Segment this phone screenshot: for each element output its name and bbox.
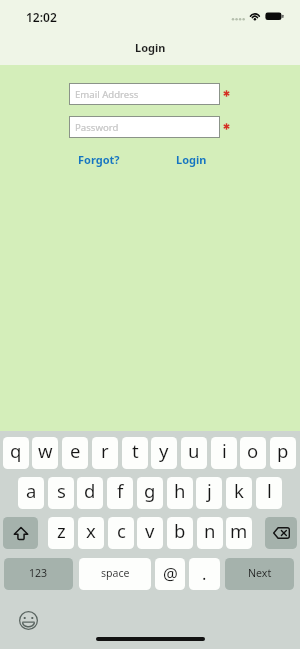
button[interactable]: Shift xyxy=(3,517,38,549)
staticText: 12:02 xyxy=(26,9,57,25)
button[interactable]: m xyxy=(226,517,252,549)
button[interactable]: b xyxy=(167,517,193,549)
staticText: x xyxy=(86,518,96,543)
button[interactable]: 123 xyxy=(4,558,73,590)
button[interactable]: . xyxy=(189,558,220,590)
button[interactable]: f xyxy=(107,477,133,509)
staticText: r xyxy=(101,438,109,463)
staticText: Next xyxy=(248,566,272,580)
staticText: w xyxy=(38,438,53,463)
button[interactable]: x xyxy=(78,517,104,549)
button[interactable]: Password xyxy=(69,116,220,138)
button[interactable]: l xyxy=(256,477,282,509)
staticText: Forgot? xyxy=(78,152,120,167)
button[interactable]: p xyxy=(270,437,296,469)
button[interactable]: Backspace xyxy=(265,517,297,549)
staticText: f xyxy=(117,478,124,503)
button[interactable]: k xyxy=(226,477,252,509)
button[interactable]: u xyxy=(181,437,207,469)
button[interactable]: d xyxy=(77,477,103,509)
staticText: l xyxy=(267,478,272,503)
button[interactable]: i xyxy=(211,437,237,469)
button[interactable]: Emoji keyboard xyxy=(19,611,38,630)
button[interactable]: n xyxy=(197,517,223,549)
staticText: @ xyxy=(163,562,178,584)
button[interactable]: y xyxy=(151,437,177,469)
button[interactable]: @ xyxy=(155,558,185,590)
staticText: space xyxy=(101,566,130,580)
button[interactable]: r xyxy=(92,437,118,469)
staticText: . xyxy=(202,562,207,584)
staticText: y xyxy=(159,438,169,463)
button[interactable]: c xyxy=(108,517,134,549)
button[interactable]: q xyxy=(3,437,29,469)
button[interactable]: Login xyxy=(176,152,207,167)
button[interactable]: a xyxy=(18,477,44,509)
staticText: n xyxy=(204,518,216,543)
staticText: c xyxy=(117,518,126,543)
staticText: e xyxy=(70,438,81,463)
staticText: z xyxy=(57,518,66,543)
button[interactable]: o xyxy=(240,437,266,469)
button[interactable]: j xyxy=(196,477,222,509)
staticText: m xyxy=(230,518,248,543)
staticText: p xyxy=(277,438,289,463)
button[interactable]: v xyxy=(137,517,163,549)
staticText: Login xyxy=(176,152,207,167)
button[interactable]: s xyxy=(48,477,74,509)
staticText: k xyxy=(234,478,244,503)
button[interactable]: h xyxy=(167,477,193,509)
staticText: g xyxy=(144,478,156,503)
staticText: Password xyxy=(75,121,119,134)
staticText: Login xyxy=(135,40,166,55)
staticText: t xyxy=(132,438,139,463)
staticText: u xyxy=(188,438,200,463)
button[interactable]: Forgot? xyxy=(78,152,120,167)
staticText: 123 xyxy=(29,566,48,580)
staticText: h xyxy=(174,478,186,503)
staticText: o xyxy=(247,438,259,463)
staticText: s xyxy=(57,478,66,503)
button[interactable]: t xyxy=(122,437,148,469)
staticText: j xyxy=(207,478,212,503)
button[interactable]: z xyxy=(48,517,74,549)
button[interactable]: Next xyxy=(225,558,294,590)
staticText: b xyxy=(174,518,186,543)
button[interactable]: space xyxy=(79,558,151,590)
button[interactable]: e xyxy=(62,437,88,469)
staticText: v xyxy=(145,518,155,543)
button[interactable]: g xyxy=(137,477,163,509)
button[interactable]: w xyxy=(32,437,58,469)
button[interactable]: Email Address xyxy=(69,83,220,105)
staticText: Email Address xyxy=(75,88,139,101)
staticText: i xyxy=(222,438,227,463)
staticText: d xyxy=(84,478,96,503)
staticText: q xyxy=(10,438,22,463)
staticText: a xyxy=(26,478,37,503)
